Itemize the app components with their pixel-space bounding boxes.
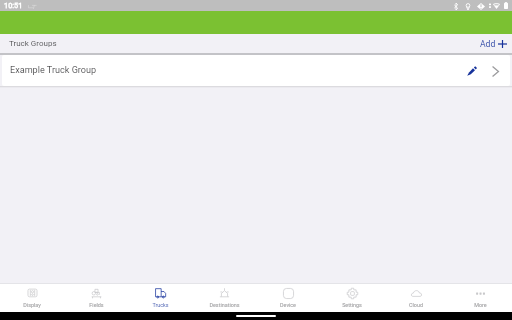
staticText: Display bbox=[23, 302, 41, 308]
staticText: Destinations bbox=[209, 302, 240, 308]
staticText: Example Truck Group bbox=[10, 65, 97, 76]
staticText: 10:51 bbox=[4, 1, 23, 10]
button[interactable]: Destinations bbox=[192, 284, 256, 312]
button[interactable]: Add bbox=[480, 39, 507, 49]
button[interactable]: Edit bbox=[465, 64, 479, 78]
staticText: Trucks bbox=[152, 302, 169, 308]
button[interactable]: Example Truck Group bbox=[2, 55, 510, 86]
staticText: Fields bbox=[89, 302, 104, 308]
button[interactable]: Trucks bbox=[128, 284, 192, 312]
button[interactable]: Display bbox=[0, 284, 64, 312]
staticText: Settings bbox=[342, 302, 362, 308]
button[interactable]: Cloud bbox=[384, 284, 448, 312]
button[interactable]: Settings bbox=[320, 284, 384, 312]
button[interactable]: Fields bbox=[64, 284, 128, 312]
staticText: Truck Groups bbox=[9, 39, 57, 48]
staticText: Add bbox=[480, 39, 496, 49]
button[interactable]: More bbox=[448, 284, 512, 312]
button[interactable]: Device bbox=[256, 284, 320, 312]
staticText: Cloud bbox=[409, 302, 423, 308]
staticText: More bbox=[474, 302, 487, 308]
staticText: Device bbox=[280, 302, 296, 308]
